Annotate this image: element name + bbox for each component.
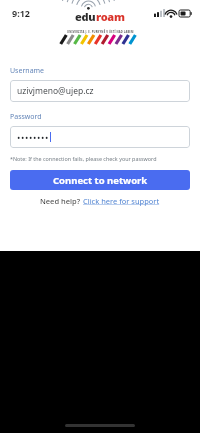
staticText: Password <box>10 112 42 122</box>
staticText: uzivjmeno@ujep.cz <box>17 85 94 97</box>
button[interactable]: uzivjmeno@ujep.cz <box>10 80 190 102</box>
staticText: •••••••• <box>17 131 49 143</box>
staticText: Username <box>10 66 45 76</box>
staticText: 9:12 <box>12 7 30 19</box>
button[interactable]: Connect to network <box>10 170 190 190</box>
staticText: roam <box>96 9 125 24</box>
staticText: Need help? <box>40 196 83 206</box>
staticText: edu <box>75 9 96 24</box>
button[interactable]: Click here for support <box>83 196 160 206</box>
staticText: *Note: If the connection fails, please c… <box>10 155 157 162</box>
button[interactable]: •••••••• <box>10 126 190 148</box>
staticText: Connect to network <box>53 174 148 187</box>
staticText: Click here for support <box>83 196 160 206</box>
staticText: UNIVERZITA J. E. PURKYNĚ V ÚSTÍ NAD LABE… <box>67 30 134 34</box>
